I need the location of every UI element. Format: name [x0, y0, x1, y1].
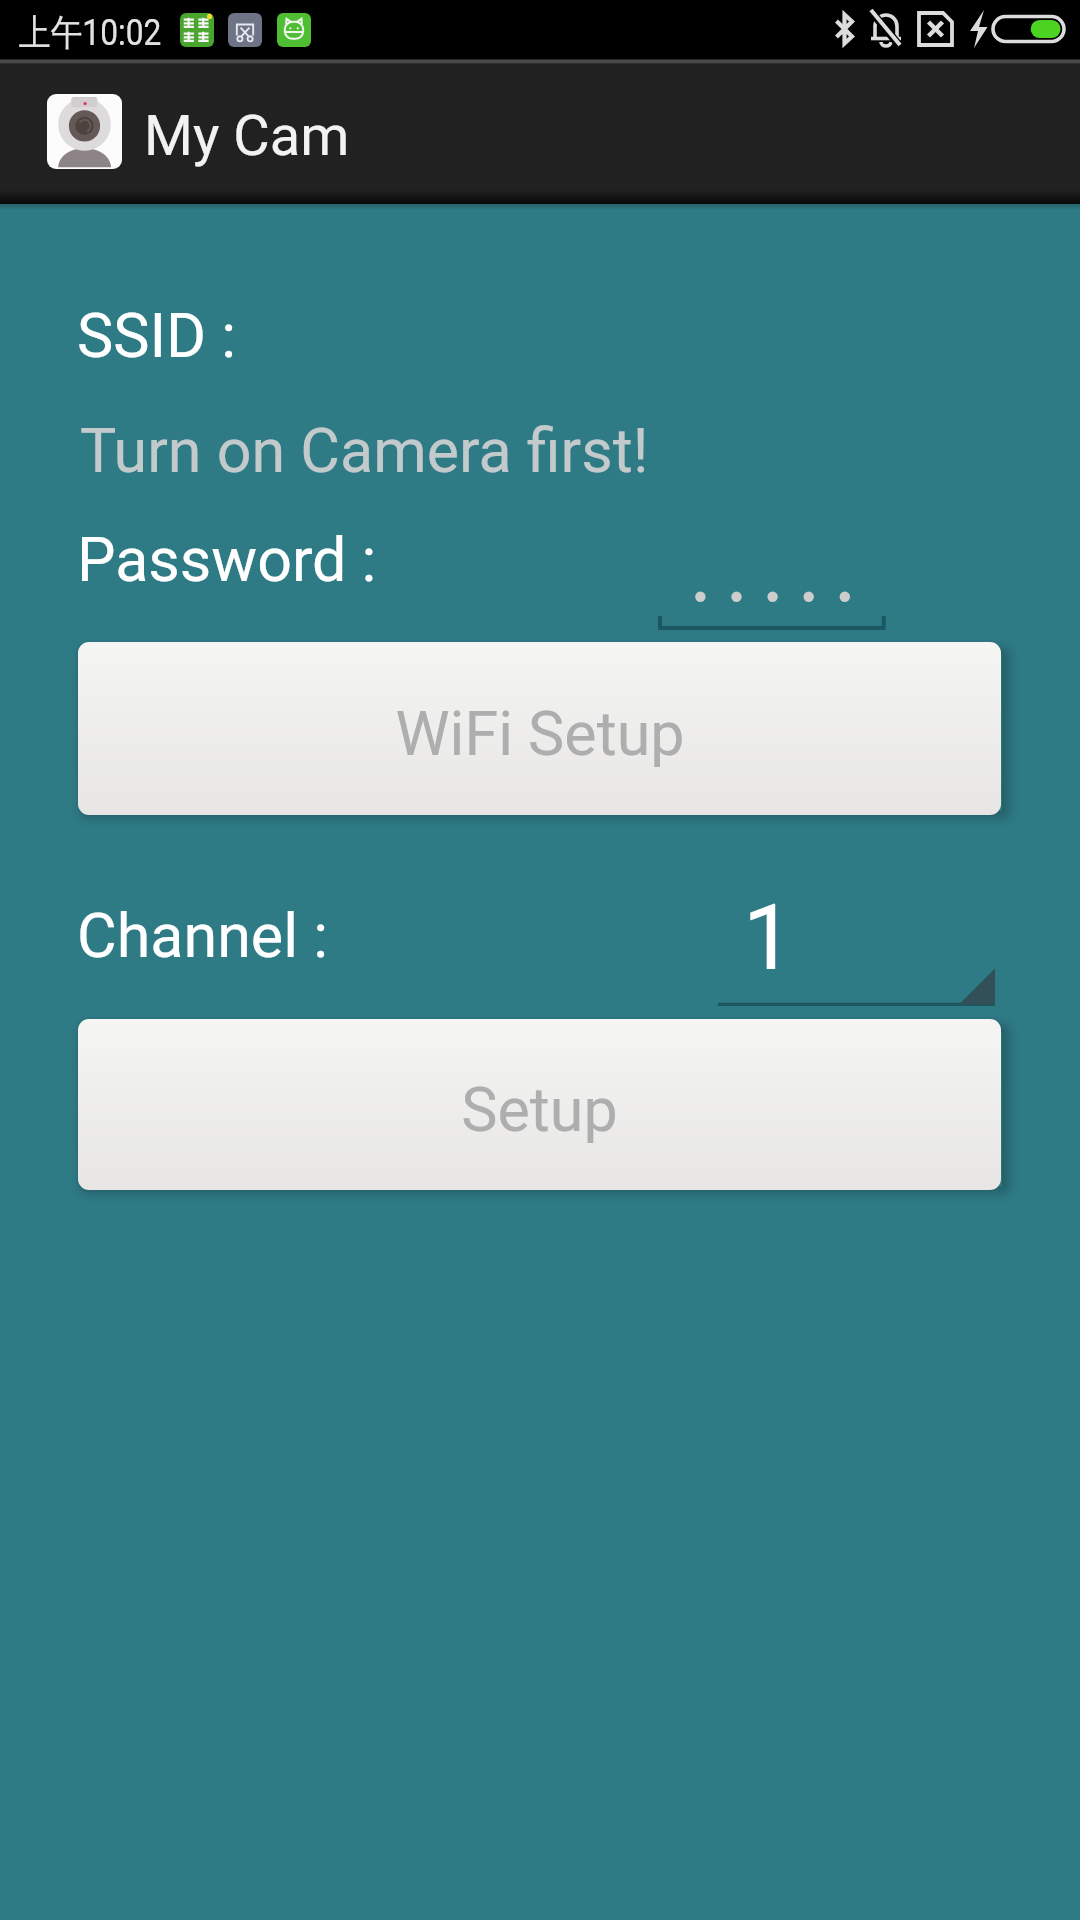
- staticText: My Cam: [144, 103, 350, 169]
- staticText: 上午10:02: [19, 10, 162, 55]
- button[interactable]: Password: [650, 556, 894, 640]
- staticText: Setup: [461, 1074, 618, 1145]
- button[interactable]: My Cam home: [47, 94, 122, 169]
- button[interactable]: Turn on Camera first!: [78, 407, 1002, 485]
- staticText: SSID :: [77, 300, 236, 371]
- staticText: 1: [743, 886, 794, 991]
- staticText: Channel :: [77, 900, 328, 971]
- staticText: WiFi Setup: [395, 698, 685, 769]
- staticText: Turn on Camera first!: [80, 415, 649, 486]
- staticText: Password :: [77, 524, 377, 595]
- button[interactable]: WiFi Setup: [78, 642, 1001, 815]
- button[interactable]: Setup: [78, 1019, 1001, 1190]
- button[interactable]: Channel selector: [718, 890, 995, 1008]
